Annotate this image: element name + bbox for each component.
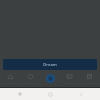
button[interactable]: Recents — [9, 88, 31, 100]
staticText: Dream — [43, 62, 57, 68]
button[interactable]: Sleep Notes — [21, 73, 40, 84]
button[interactable]: Sleep Quality — [1, 73, 20, 84]
button[interactable]: Dream — [3, 59, 97, 70]
button[interactable]: Appointments — [80, 73, 99, 84]
button[interactable]: Home — [39, 88, 61, 100]
button[interactable]: Dream — [41, 73, 60, 84]
button[interactable]: Discussion — [60, 73, 79, 84]
